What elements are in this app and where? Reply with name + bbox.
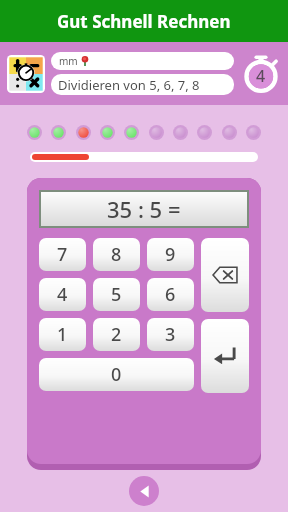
button[interactable]: 6 xyxy=(147,278,194,311)
staticText: 3 xyxy=(165,322,176,347)
staticText: 35 : 5 = xyxy=(107,194,181,224)
staticText: 4 xyxy=(57,282,68,307)
button[interactable]: 3 xyxy=(147,318,194,351)
button[interactable]: 4 xyxy=(39,278,86,311)
button[interactable]: 7 xyxy=(39,238,86,271)
staticText: 4 xyxy=(256,65,266,87)
staticText: 0 xyxy=(111,362,122,387)
button[interactable]: Enter xyxy=(201,319,249,393)
button[interactable]: Dividieren von 5, 6, 7, 8 xyxy=(51,74,234,95)
staticText: mm xyxy=(59,54,78,68)
staticText: 6 xyxy=(165,282,176,307)
button[interactable]: 9 xyxy=(147,238,194,271)
staticText: Gut Schnell Rechnen xyxy=(57,10,231,33)
staticText: 5 xyxy=(111,282,122,307)
button[interactable]: 0 xyxy=(39,358,194,391)
button[interactable]: 2 xyxy=(93,318,140,351)
staticText: 1 xyxy=(57,322,68,347)
button[interactable]: Backspace xyxy=(201,238,249,312)
button[interactable]: mm xyxy=(51,52,234,70)
button[interactable]: 5 xyxy=(93,278,140,311)
staticText: 2 xyxy=(111,322,122,347)
staticText: 9 xyxy=(165,242,176,267)
button[interactable]: 8 xyxy=(93,238,140,271)
button[interactable]: Timer xyxy=(241,54,281,94)
button[interactable]: App icon xyxy=(7,55,45,93)
staticText: 7 xyxy=(57,242,68,267)
button[interactable]: Back xyxy=(129,476,159,506)
button[interactable]: 1 xyxy=(39,318,86,351)
staticText: 8 xyxy=(111,242,122,267)
staticText: Dividieren von 5, 6, 7, 8 xyxy=(58,76,200,94)
